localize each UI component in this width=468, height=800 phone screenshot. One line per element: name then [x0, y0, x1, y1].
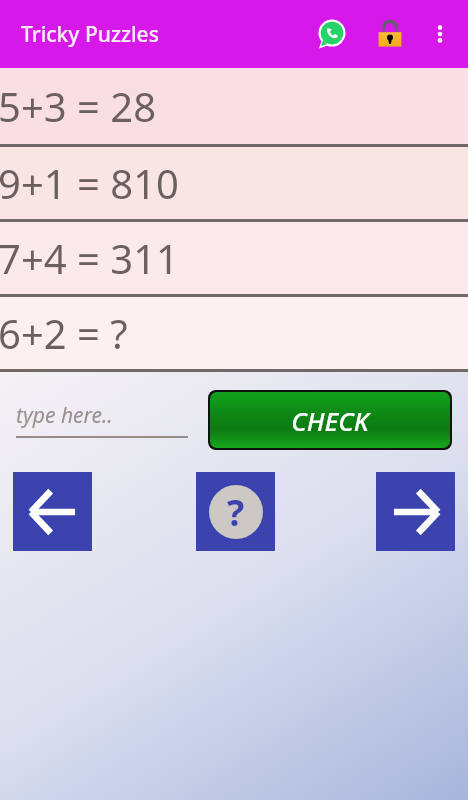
staticText: 9+1 = 810	[0, 156, 179, 210]
button[interactable]: 6+2 = ?	[0, 297, 468, 369]
button[interactable]: Help	[196, 472, 275, 551]
button[interactable]: Share on WhatsApp	[310, 12, 354, 56]
button[interactable]: CHECK	[210, 392, 450, 448]
staticText: type here..	[16, 401, 113, 430]
staticText: 7+4 = 311	[0, 231, 179, 285]
button[interactable]: Unlock	[368, 12, 412, 56]
button[interactable]: 7+4 = 311	[0, 222, 468, 294]
button[interactable]: Previous	[13, 472, 92, 551]
staticText: CHECK	[291, 403, 369, 438]
staticText: 6+2 = ?	[0, 306, 128, 360]
button[interactable]: 9+1 = 810	[0, 147, 468, 219]
button[interactable]: Next	[376, 472, 455, 551]
staticText: 5+3 = 28	[0, 79, 157, 133]
staticText: ?	[227, 488, 245, 537]
staticText: Tricky Puzzles	[21, 20, 159, 49]
button[interactable]: 5+3 = 28	[0, 68, 468, 144]
button[interactable]: More options	[420, 14, 460, 54]
